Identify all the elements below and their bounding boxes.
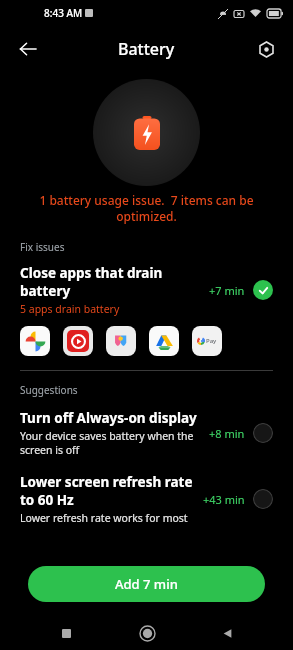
button[interactable]: Apply suggestion (253, 423, 273, 443)
staticText: Suggestions (20, 383, 78, 397)
button[interactable]: Close apps that drain battery (0, 264, 293, 316)
button[interactable]: Turn off Always-on display (0, 409, 293, 457)
button[interactable]: Recents (51, 618, 81, 648)
staticText: Lower refresh rate works for most (20, 511, 188, 525)
staticText: Close apps that drain battery (20, 264, 209, 300)
button[interactable]: Done (253, 280, 273, 300)
button[interactable]: Apply suggestion (253, 489, 273, 509)
staticText: 1 battery usage issue. 7 items can be op… (8, 192, 285, 224)
staticText: Battery (118, 38, 175, 60)
button[interactable] (149, 326, 179, 356)
staticText: Turn off Always-on display (20, 409, 197, 427)
staticText: +7 min (209, 283, 245, 298)
staticText: Fix issues (20, 240, 65, 254)
staticText: Add 7 min (115, 575, 178, 593)
staticText: Lower screen refresh rate to 60 Hz (20, 473, 197, 509)
button[interactable] (106, 326, 136, 356)
button[interactable]: Pay (192, 326, 222, 356)
staticText: +43 min (203, 492, 245, 507)
button[interactable] (20, 326, 50, 356)
button[interactable]: Back (212, 618, 242, 648)
staticText: 5 apps drain battery (20, 302, 120, 316)
staticText: Your device saves battery when the scree… (20, 429, 203, 457)
button[interactable]: Add 7 min (28, 566, 265, 602)
button[interactable]: Lower screen refresh rate to 60 Hz (0, 473, 293, 525)
button[interactable] (63, 326, 93, 356)
staticText: 8:43 AM (44, 6, 83, 20)
staticText: Pay (206, 337, 217, 345)
button[interactable]: Home (132, 618, 162, 648)
button[interactable]: Settings (249, 32, 283, 66)
staticText: +8 min (209, 426, 245, 441)
button[interactable]: Back (10, 31, 46, 67)
